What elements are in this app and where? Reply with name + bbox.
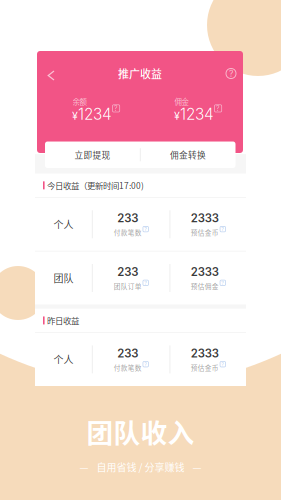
staticText: 233	[117, 211, 138, 225]
staticText: ¥	[72, 109, 78, 122]
staticText: 233	[117, 265, 138, 279]
staticText: ?	[221, 226, 224, 232]
staticText: 预估佣金	[191, 281, 219, 291]
staticText: 预估金币	[191, 363, 219, 372]
staticText: ?	[144, 280, 147, 286]
staticText: 余额	[72, 96, 86, 107]
staticText: 昨日收益	[47, 314, 79, 327]
staticText: ?	[144, 361, 147, 367]
staticText: 1234	[78, 105, 112, 123]
button[interactable]: 佣金转换	[141, 141, 235, 168]
staticText: 团队订单	[114, 281, 142, 291]
staticText: ?	[229, 68, 233, 79]
staticText: 个人	[53, 352, 73, 367]
staticText: 233	[117, 346, 138, 360]
staticText: ?	[216, 104, 220, 113]
staticText: 团队	[53, 271, 73, 285]
staticText: — 自用省钱 / 分享赚钱 —	[79, 460, 201, 474]
staticText: ?	[144, 226, 147, 232]
staticText: 立即提现	[74, 148, 110, 161]
staticText: 1234	[180, 105, 214, 123]
staticText: 2333	[191, 211, 219, 225]
staticText: 2333	[191, 265, 219, 279]
button[interactable]: 立即提现	[45, 141, 140, 168]
staticText: 付款笔数	[114, 228, 142, 237]
staticText: 预估金币	[191, 228, 219, 237]
staticText: 团队收入	[86, 412, 194, 451]
staticText: 佣金转换	[170, 148, 206, 161]
button[interactable]: 返回	[38, 59, 62, 88]
staticText: 付款笔数	[114, 363, 142, 372]
staticText: ?	[114, 104, 118, 113]
staticText: 个人	[53, 217, 73, 232]
staticText: 2333	[191, 346, 219, 360]
staticText: 推广收益	[118, 66, 162, 81]
staticText: ?	[221, 280, 224, 286]
staticText: 佣金	[174, 96, 188, 107]
staticText: 今日收益（更新时间17:00)	[47, 179, 144, 191]
button[interactable]: 帮助	[220, 61, 242, 86]
staticText: ?	[221, 361, 224, 367]
staticText: ¥	[174, 109, 180, 122]
